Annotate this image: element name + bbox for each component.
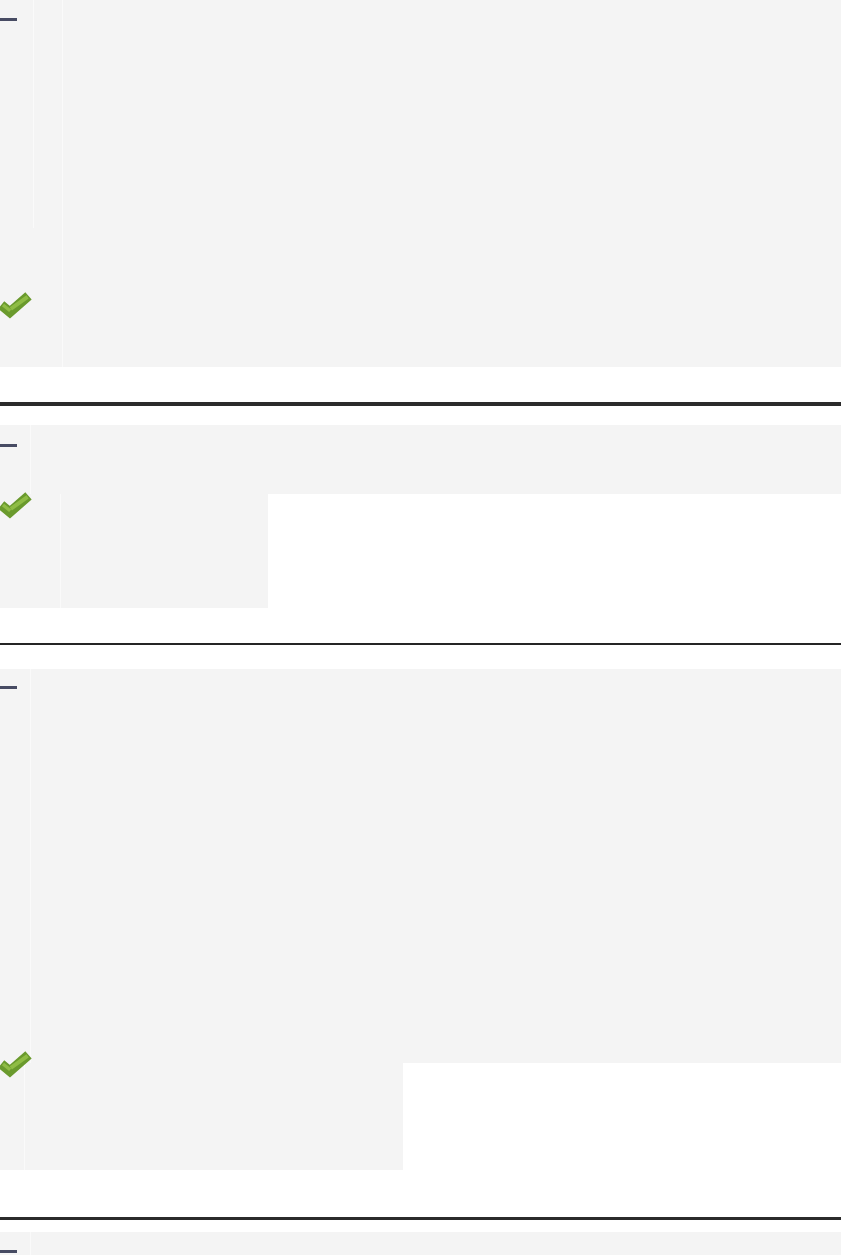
button[interactable] xyxy=(0,1063,403,1170)
button[interactable] xyxy=(0,425,841,494)
button[interactable] xyxy=(0,1232,841,1255)
button[interactable] xyxy=(0,0,841,367)
button[interactable] xyxy=(0,669,841,1063)
button[interactable]: Completed xyxy=(0,293,30,317)
button[interactable] xyxy=(0,494,268,608)
button[interactable]: Completed xyxy=(0,493,30,517)
button[interactable]: Completed xyxy=(0,1052,30,1076)
